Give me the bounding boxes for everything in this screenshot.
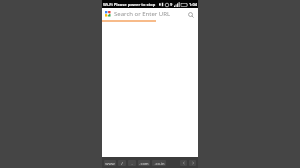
button[interactable]: Search or Enter URL [102, 8, 198, 20]
staticText: 1:04 [189, 2, 197, 7]
button[interactable]: Next [189, 160, 196, 166]
button[interactable]: www [104, 160, 116, 166]
button[interactable]: .com [138, 160, 150, 166]
staticText: Search or Enter URL [114, 10, 186, 18]
staticText: / [121, 161, 123, 166]
button[interactable]: .co.in [152, 160, 166, 166]
button[interactable]: Search [186, 10, 195, 19]
staticText: . [131, 161, 133, 166]
staticText: .com [139, 161, 149, 166]
button[interactable]: . [128, 160, 136, 166]
button[interactable]: / [118, 160, 126, 166]
staticText: www [105, 161, 115, 166]
button[interactable]: Previous [180, 160, 187, 166]
staticText: Wi-Fi Please power to stop [103, 2, 156, 7]
staticText: .co.in [154, 161, 165, 166]
staticText: 9 [170, 2, 173, 7]
